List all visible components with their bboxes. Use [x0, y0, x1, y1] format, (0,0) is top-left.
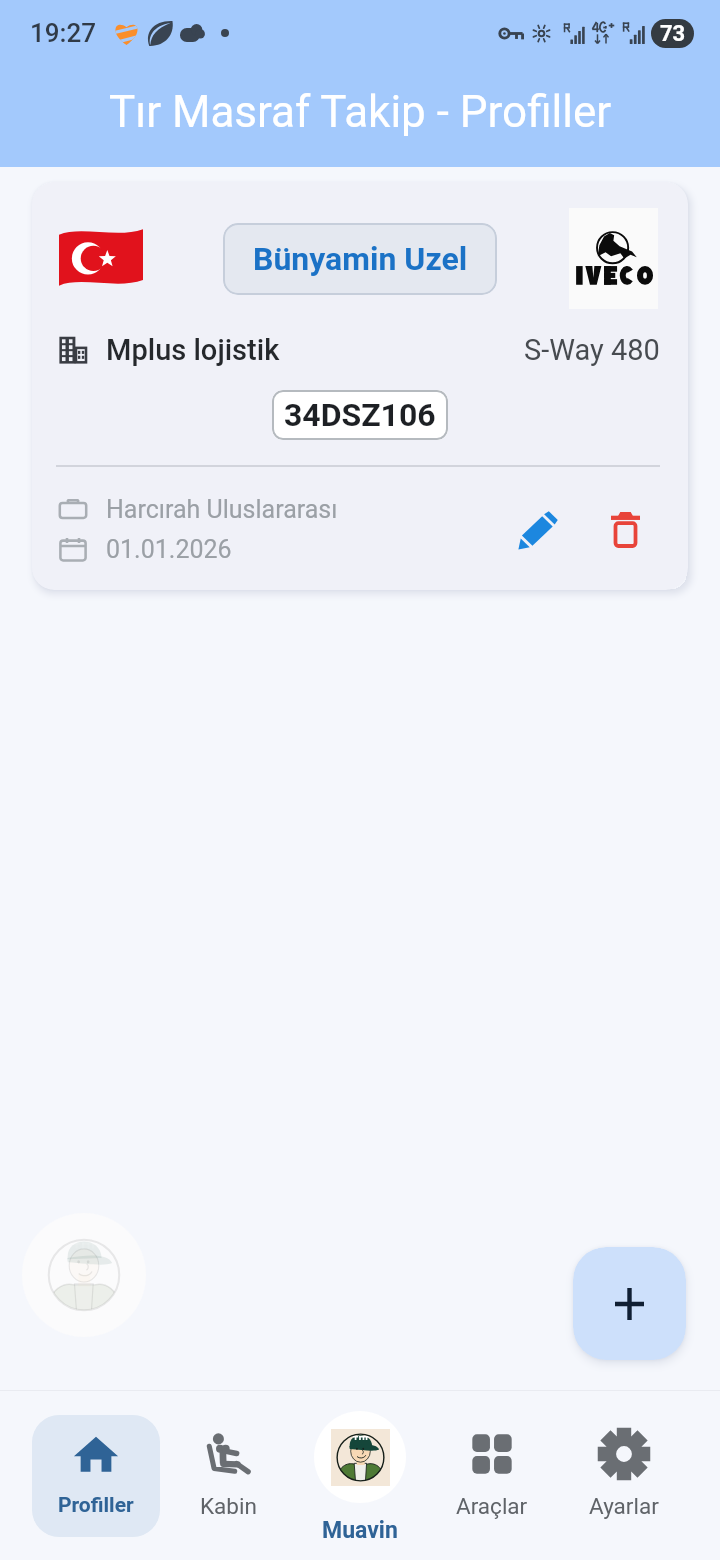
staticText: Tır Masraf Takip - Profiller: [109, 86, 612, 138]
button[interactable]: Sil: [592, 497, 658, 563]
staticText: Profiller: [58, 1493, 134, 1518]
button[interactable]: Profiller: [32, 1415, 160, 1537]
button[interactable]: Ekle: [573, 1247, 686, 1360]
staticText: 01.01.2026: [106, 535, 232, 564]
button[interactable]: Muavin profili: [22, 1213, 146, 1337]
button[interactable]: Muavin: [314, 1411, 406, 1544]
staticText: S-Way 480: [524, 333, 660, 367]
staticText: Araçlar: [456, 1493, 528, 1519]
staticText: 19:27: [30, 18, 97, 48]
button[interactable]: Ayarlar: [560, 1415, 688, 1537]
staticText: Mplus lojistik: [106, 333, 280, 367]
staticText: Kabin: [200, 1493, 257, 1519]
button[interactable]: Araçlar: [428, 1415, 556, 1537]
button[interactable]: Kabin: [164, 1415, 292, 1537]
staticText: Harcırah Uluslararası: [106, 495, 338, 524]
staticText: Bünyamin Uzel: [253, 240, 468, 278]
staticText: Ayarlar: [589, 1493, 659, 1519]
button[interactable]: Bünyamin Uzel: [32, 182, 688, 590]
staticText: Muavin: [322, 1517, 398, 1544]
button[interactable]: Bünyamin Uzel: [223, 223, 497, 295]
staticText: 73: [660, 21, 686, 47]
button[interactable]: Düzenle: [504, 498, 570, 564]
staticText: 34DSZ106: [284, 396, 436, 434]
